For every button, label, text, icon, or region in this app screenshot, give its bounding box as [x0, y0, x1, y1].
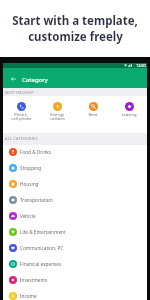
staticText: ALL CATEGORIES [5, 136, 38, 141]
staticText: Transportation [20, 197, 53, 203]
staticText: Income [20, 293, 37, 299]
staticText: customize freely [28, 29, 123, 45]
staticText: 12:00 [136, 63, 146, 68]
staticText: Leasing [121, 112, 137, 118]
staticText: Category [22, 75, 48, 83]
staticText: Investments [20, 277, 48, 283]
staticText: MOST FREQUENT [5, 90, 34, 95]
button[interactable]: Transportation [3, 192, 147, 208]
staticText: utilities [50, 116, 65, 122]
staticText: Phone, [14, 112, 28, 118]
button[interactable]: Food & Drinks [3, 144, 147, 160]
button[interactable]: Phone, [3, 102, 39, 124]
button[interactable]: Communication, PC [3, 240, 147, 256]
staticText: Energy [50, 112, 64, 118]
staticText: Housing [20, 181, 39, 187]
staticText: Communication, PC [20, 245, 64, 251]
button[interactable]: Income [3, 288, 147, 300]
staticText: Vehicle [20, 213, 36, 219]
staticText: cell phone [11, 116, 32, 122]
staticText: Shopping [20, 165, 42, 171]
staticText: Food & Drinks [20, 149, 52, 155]
staticText: Start with a template, [12, 13, 138, 29]
button[interactable]: Shopping [3, 160, 147, 176]
button[interactable]: Financial expenses [3, 256, 147, 272]
button[interactable]: Life & Entertainment [3, 224, 147, 240]
staticText: Financial expenses [20, 261, 62, 267]
button[interactable]: Vehicle [3, 208, 147, 224]
button[interactable]: Housing [3, 176, 147, 192]
staticText: Rent [88, 112, 98, 118]
button[interactable]: Energy [39, 102, 75, 124]
button[interactable]: Rent [75, 102, 111, 118]
staticText: Life & Entertainment [20, 229, 66, 235]
button[interactable]: Investments [3, 272, 147, 288]
button[interactable]: Back [8, 73, 19, 84]
button[interactable]: Leasing [111, 102, 147, 118]
